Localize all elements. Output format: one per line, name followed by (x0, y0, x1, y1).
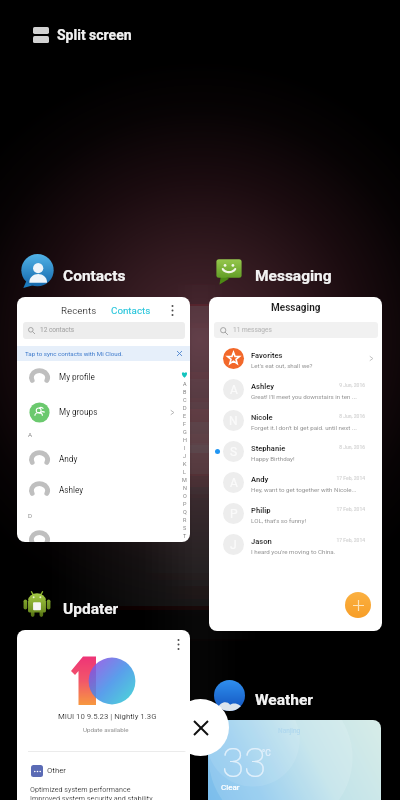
button[interactable]: Messaging (211, 253, 332, 289)
staticText: Ashley (251, 382, 275, 391)
button[interactable]: Recents (17, 297, 190, 542)
staticText: LOL, that's so funny! (251, 517, 307, 524)
staticText: Other (47, 766, 66, 775)
staticText: F (183, 421, 187, 427)
button[interactable]: Tap to sync contacts with Mi Cloud. (17, 346, 190, 361)
staticText: °C (262, 748, 271, 758)
staticText: Nicole (251, 413, 273, 422)
staticText: I (184, 445, 186, 451)
button[interactable] (17, 528, 190, 542)
staticText: Andy (59, 454, 78, 464)
staticText: B (183, 389, 187, 395)
button[interactable]: Favorites (209, 344, 382, 373)
button[interactable]: Dismiss (172, 346, 187, 361)
button[interactable]: Andy (17, 448, 190, 470)
staticText: A (183, 381, 187, 387)
button[interactable]: Updater (19, 586, 119, 622)
staticText: E (183, 413, 187, 419)
staticText: S (230, 445, 238, 459)
button[interactable]: S (209, 437, 382, 466)
staticText: Nanjing (278, 727, 301, 735)
staticText: P (230, 507, 238, 521)
button[interactable]: P (209, 499, 382, 528)
staticText: Ashley (59, 485, 84, 495)
staticText: Andy (251, 475, 269, 484)
staticText: D (183, 405, 187, 411)
staticText: 17 Feb, 2014 (305, 537, 365, 543)
staticText: My groups (59, 407, 98, 417)
staticText: 8 Jun, 2016 (305, 444, 365, 450)
staticText: 8 Jun, 2016 (305, 413, 365, 419)
button[interactable]: More options (163, 301, 181, 319)
button[interactable]: Close recents (172, 699, 229, 756)
staticText: 9 Jun, 2016 (305, 382, 365, 388)
staticText: My profile (59, 372, 95, 382)
staticText: Hey, want to get together with Nicole... (251, 486, 357, 493)
staticText: Messaging (271, 302, 321, 314)
button[interactable]: My groups (17, 401, 190, 423)
staticText: Q (183, 509, 187, 515)
staticText: Favorites (251, 351, 283, 360)
staticText: Forget it.I don't bl get paid. until nex… (251, 424, 357, 431)
staticText: Update available (83, 726, 129, 733)
staticText: O (183, 493, 187, 499)
staticText: Happy Birthday! (251, 455, 295, 462)
staticText: J (183, 453, 187, 459)
button[interactable]: N (209, 406, 382, 435)
button[interactable]: Weather (211, 677, 313, 713)
staticText: Stephanie (251, 444, 286, 453)
staticText: L (183, 469, 186, 475)
staticText: 12 contacts (40, 326, 75, 334)
staticText: 17 Feb, 2014 (305, 475, 365, 481)
staticText: Great! I'll meet you downstairs in ten .… (251, 393, 357, 400)
staticText: A (230, 476, 238, 490)
button[interactable]: Nanjing (208, 720, 381, 800)
staticText: K (183, 461, 187, 467)
staticText: H (183, 437, 187, 443)
staticText: N (229, 414, 238, 428)
staticText: 33 (222, 740, 266, 787)
staticText: Optimized system performance (30, 785, 131, 793)
staticText: Contacts (111, 305, 151, 316)
staticText: I heard you're moving to China. (251, 548, 336, 555)
button[interactable]: New message (345, 592, 371, 618)
staticText: R (183, 517, 187, 523)
button[interactable]: A (209, 375, 382, 404)
button[interactable]: A (209, 468, 382, 497)
button[interactable]: Contacts (19, 253, 126, 289)
staticText: 11 messages (233, 326, 272, 334)
staticText: N (183, 485, 187, 491)
button[interactable]: Split screen (33, 27, 132, 43)
staticText: Let's eat out, shall we? (251, 362, 313, 369)
button[interactable]: Messaging (209, 297, 382, 631)
staticText: D (28, 512, 33, 519)
staticText: 17 Feb, 2014 (305, 506, 365, 512)
staticText: C (183, 397, 187, 403)
staticText: Contacts (63, 267, 126, 285)
staticText: Messaging (255, 267, 332, 285)
staticText: A (28, 431, 33, 438)
staticText: G (183, 429, 187, 435)
staticText: MIUI 10 9.5.23 | Nightly 1.3G (58, 712, 157, 721)
staticText: Recents (61, 305, 97, 316)
staticText: P (183, 501, 187, 507)
staticText: Split screen (57, 27, 132, 43)
button[interactable]: My profile (17, 366, 190, 388)
staticText: Weather (255, 691, 313, 709)
button[interactable]: J (209, 530, 382, 559)
staticText: Clear (221, 783, 240, 792)
staticText: A (230, 383, 238, 397)
staticText: S (183, 525, 187, 531)
staticText: Updater (63, 600, 119, 618)
staticText: Tap to sync contacts with Mi Cloud. (25, 350, 123, 357)
staticText: Improved system security and stability (30, 794, 153, 800)
staticText: Jason (251, 537, 272, 546)
button[interactable]: 12 contacts (23, 322, 185, 339)
staticText: Philip (251, 506, 271, 515)
button[interactable]: Ashley (17, 479, 190, 501)
button[interactable]: 11 messages (214, 322, 378, 338)
staticText: T (183, 533, 187, 539)
button[interactable]: More options (169, 635, 187, 653)
button[interactable]: More options (17, 630, 190, 800)
staticText: J (230, 538, 237, 552)
